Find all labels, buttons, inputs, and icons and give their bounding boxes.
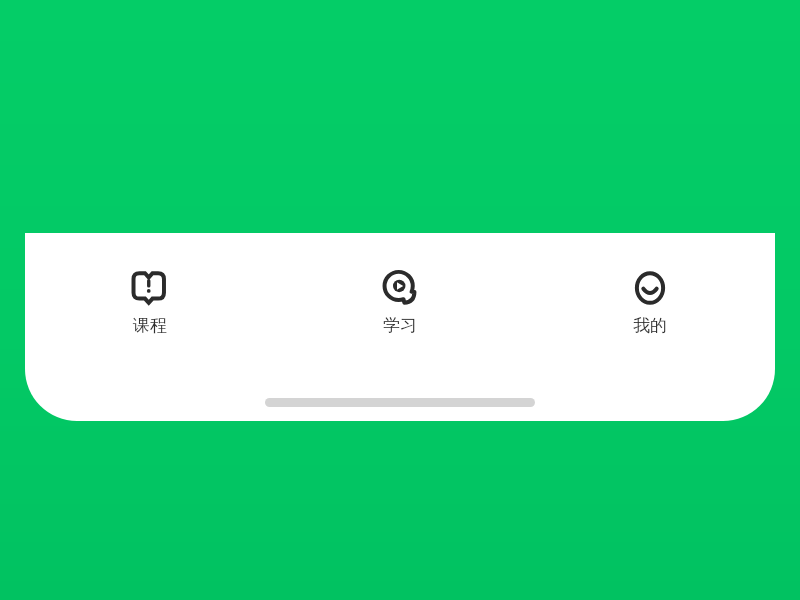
staticText: 学习: [383, 315, 417, 336]
button[interactable]: 我的: [525, 263, 775, 340]
button[interactable]: 课程: [25, 263, 275, 340]
button[interactable]: 学习: [275, 263, 525, 340]
staticText: 课程: [133, 315, 167, 336]
staticText: 我的: [633, 315, 667, 336]
